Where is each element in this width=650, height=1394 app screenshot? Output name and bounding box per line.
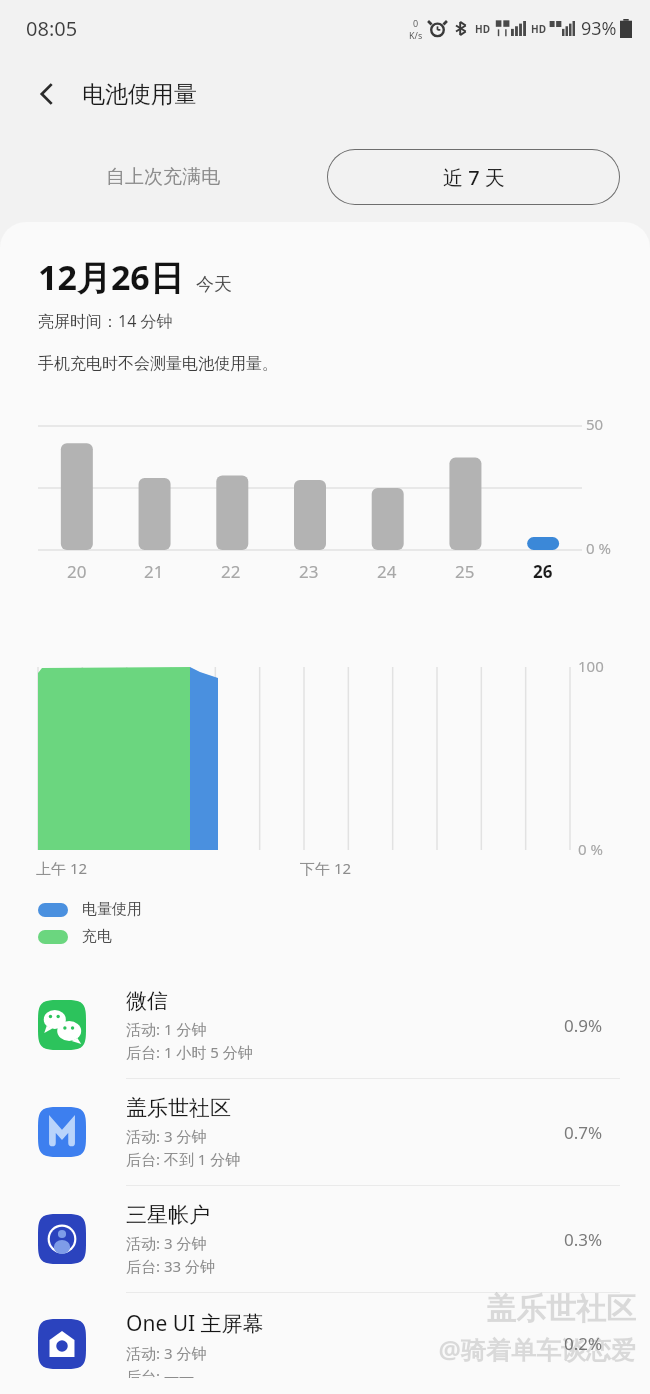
staticText: 0 % (586, 538, 611, 558)
staticText: 50 (586, 414, 604, 434)
staticText: 93% (581, 16, 617, 41)
staticText: 25 (455, 560, 475, 583)
staticText: 盖乐世社区 (126, 1095, 231, 1121)
staticText: 盖乐世社区 (486, 1290, 636, 1328)
staticText: 0.2% (564, 1332, 620, 1355)
staticText: 12月26日 (38, 254, 184, 300)
staticText: 后台: —— (126, 1366, 194, 1378)
staticText: 近 7 天 (443, 164, 505, 191)
button[interactable]: 微信 (0, 972, 650, 1078)
staticText: 活动: 3 分钟 (126, 1126, 207, 1146)
staticText: 100 (578, 656, 604, 676)
staticText: 08:05 (26, 15, 78, 42)
staticText: 充电 (82, 927, 112, 946)
staticText: 微信 (126, 988, 168, 1014)
staticText: 26 (533, 560, 553, 583)
staticText: @骑着单车谈恋爱 (438, 1332, 636, 1366)
staticText: One UI 主屏幕 (126, 1309, 264, 1338)
staticText: K/s (409, 29, 423, 41)
staticText: 0 % (578, 839, 603, 859)
button[interactable]: 三星帐户 (0, 1186, 650, 1292)
staticText: 活动: 3 分钟 (126, 1343, 207, 1363)
staticText: 手机充电时不会测量电池使用量。 (38, 354, 278, 374)
staticText: 0.9% (564, 1014, 620, 1037)
staticText: 电量使用 (82, 900, 142, 919)
staticText: 24 (377, 560, 397, 583)
staticText: 下午 12 (300, 858, 352, 878)
staticText: HD (531, 22, 546, 36)
staticText: 活动: 3 分钟 (126, 1233, 207, 1253)
staticText: 23 (299, 560, 319, 583)
staticText: 后台: 33 分钟 (126, 1256, 215, 1276)
staticText: 0.3% (564, 1228, 620, 1251)
staticText: 亮屏时间：14 分钟 (38, 310, 173, 332)
staticText: 21 (144, 560, 164, 583)
staticText: 后台: 不到 1 分钟 (126, 1149, 241, 1169)
staticText: 三星帐户 (126, 1202, 210, 1228)
staticText: 20 (67, 560, 87, 583)
staticText: 电池使用量 (82, 80, 197, 109)
staticText: HD (475, 22, 490, 36)
staticText: 活动: 1 分钟 (126, 1019, 207, 1039)
staticText: 0 (413, 17, 419, 29)
staticText: 后台: 1 小时 5 分钟 (126, 1042, 253, 1062)
staticText: 0.7% (564, 1121, 620, 1144)
button[interactable]: Back (22, 69, 72, 119)
button[interactable]: One UI 主屏幕 (0, 1293, 650, 1394)
staticText: 上午 12 (36, 858, 88, 878)
button[interactable]: 近 7 天 (327, 149, 620, 205)
button[interactable]: 自上次充满电 (92, 155, 234, 199)
staticText: 今天 (196, 273, 232, 296)
button[interactable]: 盖乐世社区 (0, 1079, 650, 1185)
staticText: 自上次充满电 (106, 165, 220, 189)
staticText: 22 (221, 560, 241, 583)
